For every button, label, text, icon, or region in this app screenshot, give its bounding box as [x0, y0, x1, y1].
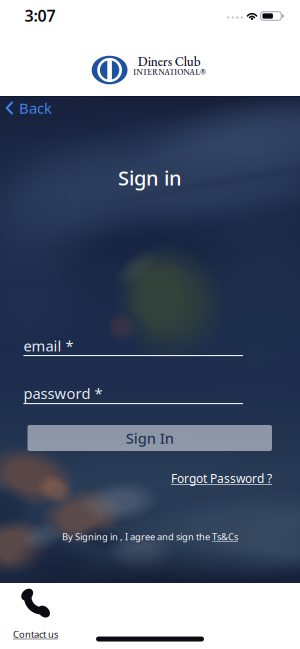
staticText: Forgot Password ?: [171, 470, 272, 486]
staticText: INTERNATIONAL®: [133, 67, 205, 77]
staticText: 3:07: [24, 5, 55, 26]
button[interactable]: Contact us: [13, 589, 73, 639]
staticText: password *: [23, 383, 102, 403]
staticText: Diners Club: [138, 53, 201, 70]
button[interactable]: Diners Club: [90, 48, 210, 92]
button[interactable]: Sign In: [27, 425, 272, 451]
staticText: Sign in: [118, 164, 182, 191]
staticText: Back: [19, 98, 52, 118]
button[interactable]: Forgot Password ?: [171, 470, 272, 486]
button[interactable]: Ts&Cs: [212, 530, 238, 543]
staticText: By Signing in , I agree and sign the: [62, 530, 212, 543]
staticText: Ts&Cs: [212, 530, 238, 543]
staticText: Sign In: [126, 428, 174, 448]
staticText: email *: [23, 336, 73, 355]
staticText: Contact us: [13, 628, 58, 640]
button[interactable]: Back: [5, 97, 52, 119]
